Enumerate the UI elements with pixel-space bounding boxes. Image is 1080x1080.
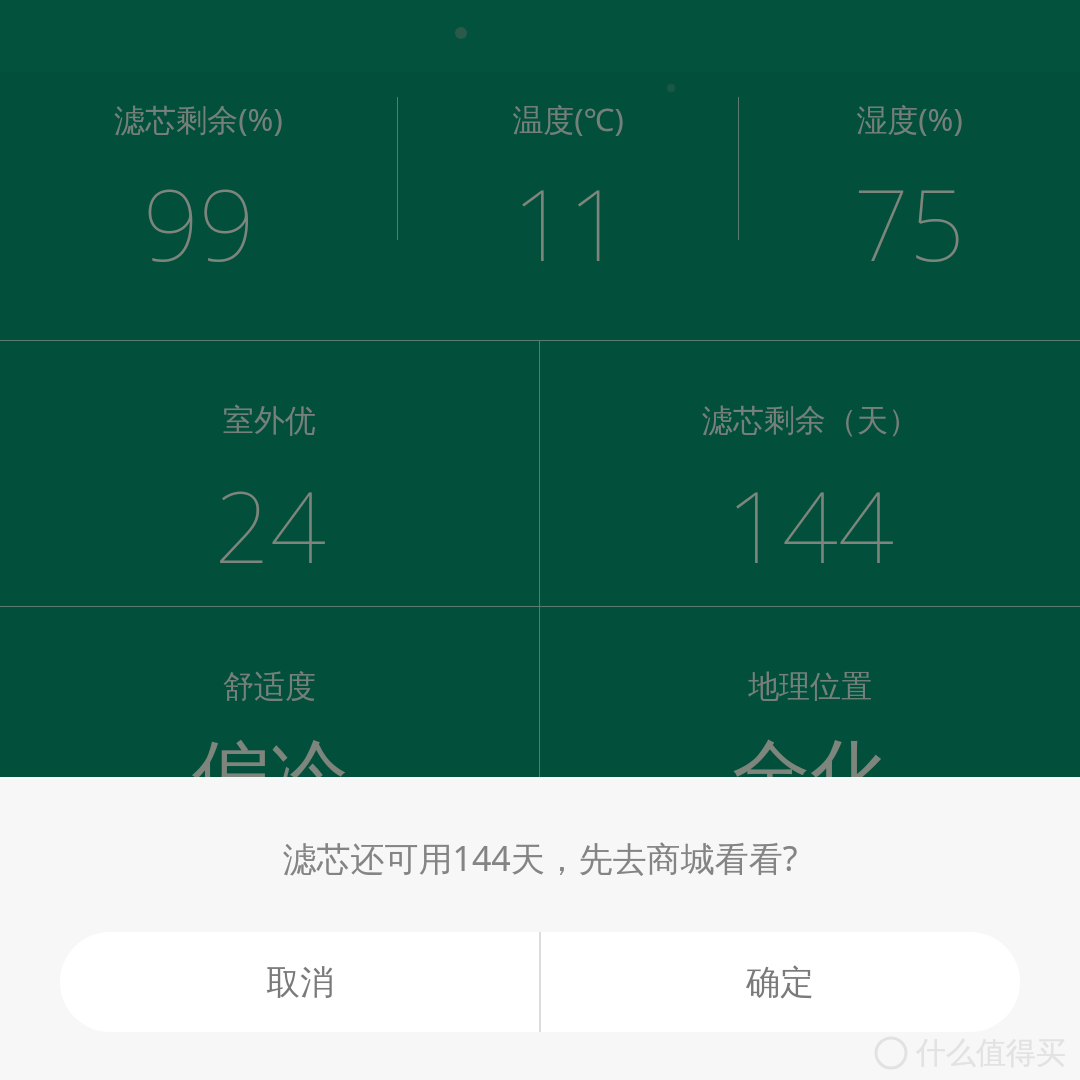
staticText: 11 xyxy=(512,156,624,289)
staticText: 温度(℃) xyxy=(512,98,624,140)
staticText: 取消 xyxy=(266,961,334,1004)
button[interactable]: 室外优 xyxy=(0,341,539,606)
staticText: 偏冷 xyxy=(192,728,348,782)
staticText: 全化 xyxy=(732,728,888,782)
staticText: 144 xyxy=(726,458,894,591)
button[interactable]: 温度(℃) xyxy=(397,0,738,340)
button[interactable]: 滤芯剩余(%) xyxy=(0,0,397,340)
staticText: 滤芯剩余(%) xyxy=(114,98,283,140)
button[interactable]: 确定 xyxy=(540,932,1020,1032)
staticText: 确定 xyxy=(746,961,814,1004)
staticText: 什么值得买 xyxy=(916,1034,1066,1072)
button[interactable]: 地理位置 xyxy=(540,607,1080,782)
staticText: 湿度(%) xyxy=(856,98,963,140)
staticText: 舒适度 xyxy=(223,667,316,706)
staticText: 室外优 xyxy=(223,401,316,440)
staticText: 75 xyxy=(853,156,965,289)
staticText: 24 xyxy=(214,458,326,591)
staticText: 99 xyxy=(143,156,255,289)
button[interactable]: 舒适度 xyxy=(0,607,539,782)
button[interactable]: 滤芯剩余（天） xyxy=(540,341,1080,606)
button[interactable]: 取消 xyxy=(60,932,540,1032)
staticText: 滤芯还可用144天，先去商城看看? xyxy=(282,835,798,881)
staticText: 地理位置 xyxy=(748,667,872,706)
button[interactable]: 湿度(%) xyxy=(738,0,1080,340)
staticText: 滤芯剩余（天） xyxy=(702,401,919,440)
